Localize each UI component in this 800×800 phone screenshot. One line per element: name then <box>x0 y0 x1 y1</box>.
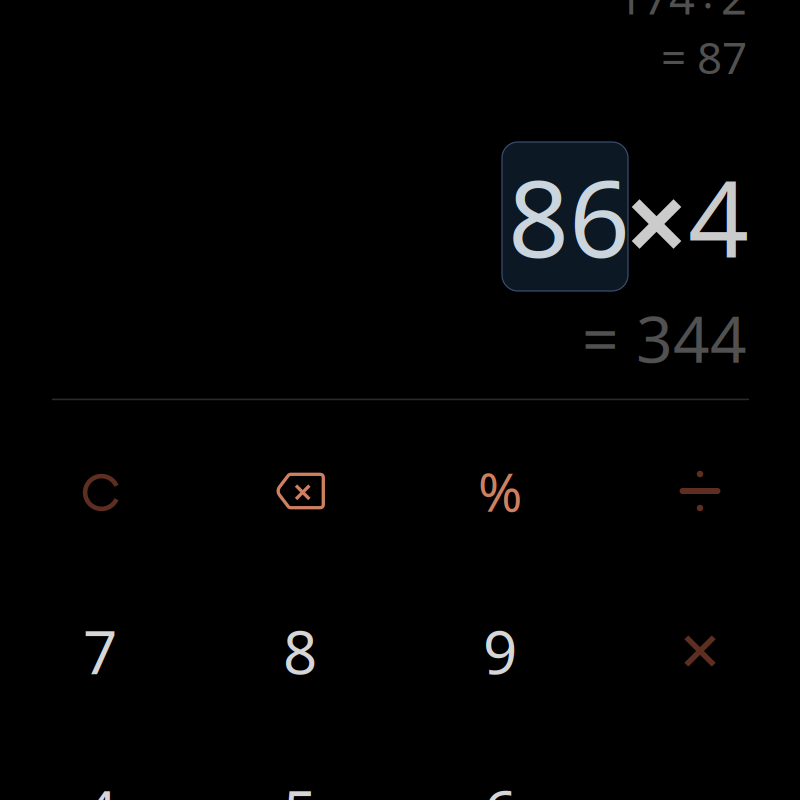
staticText: 9 <box>483 611 517 691</box>
staticText: 5 <box>283 771 317 800</box>
button[interactable]: 8 <box>200 571 400 731</box>
button[interactable]: 6 <box>400 731 600 800</box>
button[interactable]: 5 <box>200 731 400 800</box>
staticText: 6 <box>483 771 517 800</box>
staticText: % <box>478 456 522 526</box>
button[interactable]: Clear <box>0 411 200 571</box>
button[interactable]: 9 <box>400 571 600 731</box>
button[interactable]: Divide <box>600 411 800 571</box>
staticText: 4 <box>688 145 749 287</box>
staticText: 174÷2 <box>617 0 747 27</box>
staticText: 86 <box>508 145 630 287</box>
button[interactable]: Percent <box>400 411 600 571</box>
button[interactable]: 7 <box>0 571 200 731</box>
staticText: 7 <box>83 611 117 691</box>
staticText: 4 <box>83 771 117 800</box>
staticText: = 344 <box>582 295 747 380</box>
button[interactable]: 4 <box>0 731 200 800</box>
staticText: = 87 <box>661 28 747 86</box>
button[interactable]: Delete <box>200 411 400 571</box>
staticText: 8 <box>283 611 317 691</box>
button[interactable]: Multiply <box>600 571 800 731</box>
